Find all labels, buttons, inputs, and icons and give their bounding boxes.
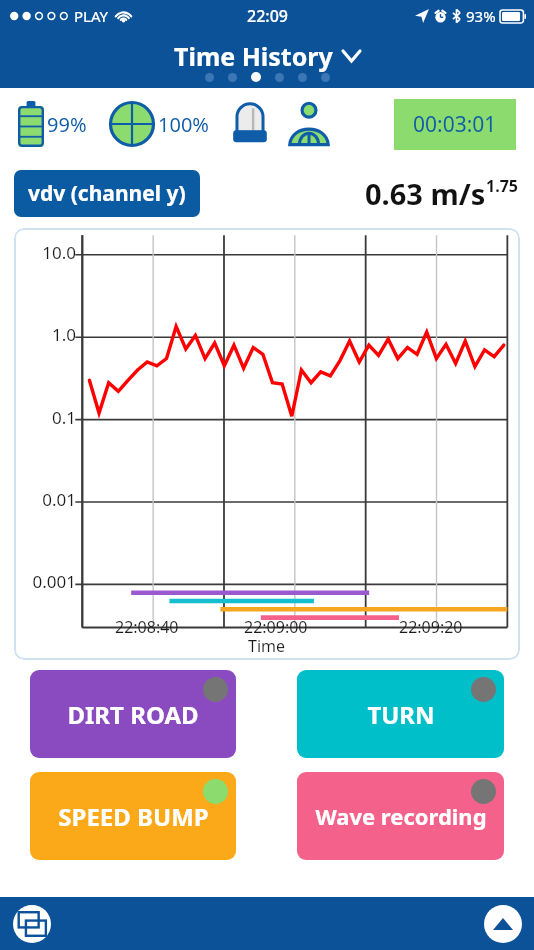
- button[interactable]: Wave recording: [297, 772, 504, 860]
- button[interactable]: Time History: [174, 39, 361, 73]
- staticText: 22:09:00: [244, 616, 308, 638]
- staticText: 22:09: [247, 5, 288, 27]
- staticText: TURN: [367, 698, 435, 731]
- button[interactable]: vdv (channel y): [14, 170, 200, 217]
- staticText: Time History: [174, 39, 333, 73]
- button[interactable]: Alert beacon: [229, 101, 271, 147]
- staticText: 0.001: [32, 570, 76, 593]
- button[interactable]: TURN: [297, 670, 504, 758]
- staticText: DIRT ROAD: [67, 698, 199, 731]
- staticText: SPEED BUMP: [58, 800, 209, 833]
- button[interactable]: Driver: [285, 101, 333, 147]
- staticText: Wave recording: [315, 801, 487, 831]
- staticText: 0.1: [51, 406, 76, 429]
- staticText: PLAY: [74, 6, 109, 26]
- staticText: Time: [248, 635, 286, 657]
- staticText: 10.0: [42, 241, 76, 264]
- button[interactable]: Storage: [109, 101, 209, 147]
- other: Battery: [18, 101, 44, 147]
- staticText: 99%: [47, 111, 87, 138]
- button[interactable]: 00:03:01: [394, 99, 516, 150]
- button[interactable]: Battery: [18, 101, 87, 147]
- staticText: 22:09:20: [399, 616, 463, 638]
- button[interactable]: SPEED BUMP: [30, 772, 236, 860]
- staticText: 0.01: [42, 488, 76, 511]
- staticText: 00:03:01: [413, 110, 497, 139]
- staticText: 1.0: [51, 323, 76, 346]
- staticText: 100%: [158, 111, 209, 138]
- other: Expand: [342, 50, 361, 62]
- button[interactable]: DIRT ROAD: [30, 670, 236, 758]
- button[interactable]: 10.0: [14, 228, 520, 660]
- button[interactable]: Logo: [13, 905, 51, 943]
- staticText: 0.63 m/s: [365, 174, 486, 213]
- button[interactable]: Scroll up: [484, 905, 522, 943]
- other: Storage: [109, 101, 155, 147]
- staticText: 93%: [466, 6, 496, 26]
- staticText: 1.75: [486, 175, 518, 197]
- staticText: vdv (channel y): [28, 179, 186, 208]
- staticText: 22:08:40: [115, 616, 179, 638]
